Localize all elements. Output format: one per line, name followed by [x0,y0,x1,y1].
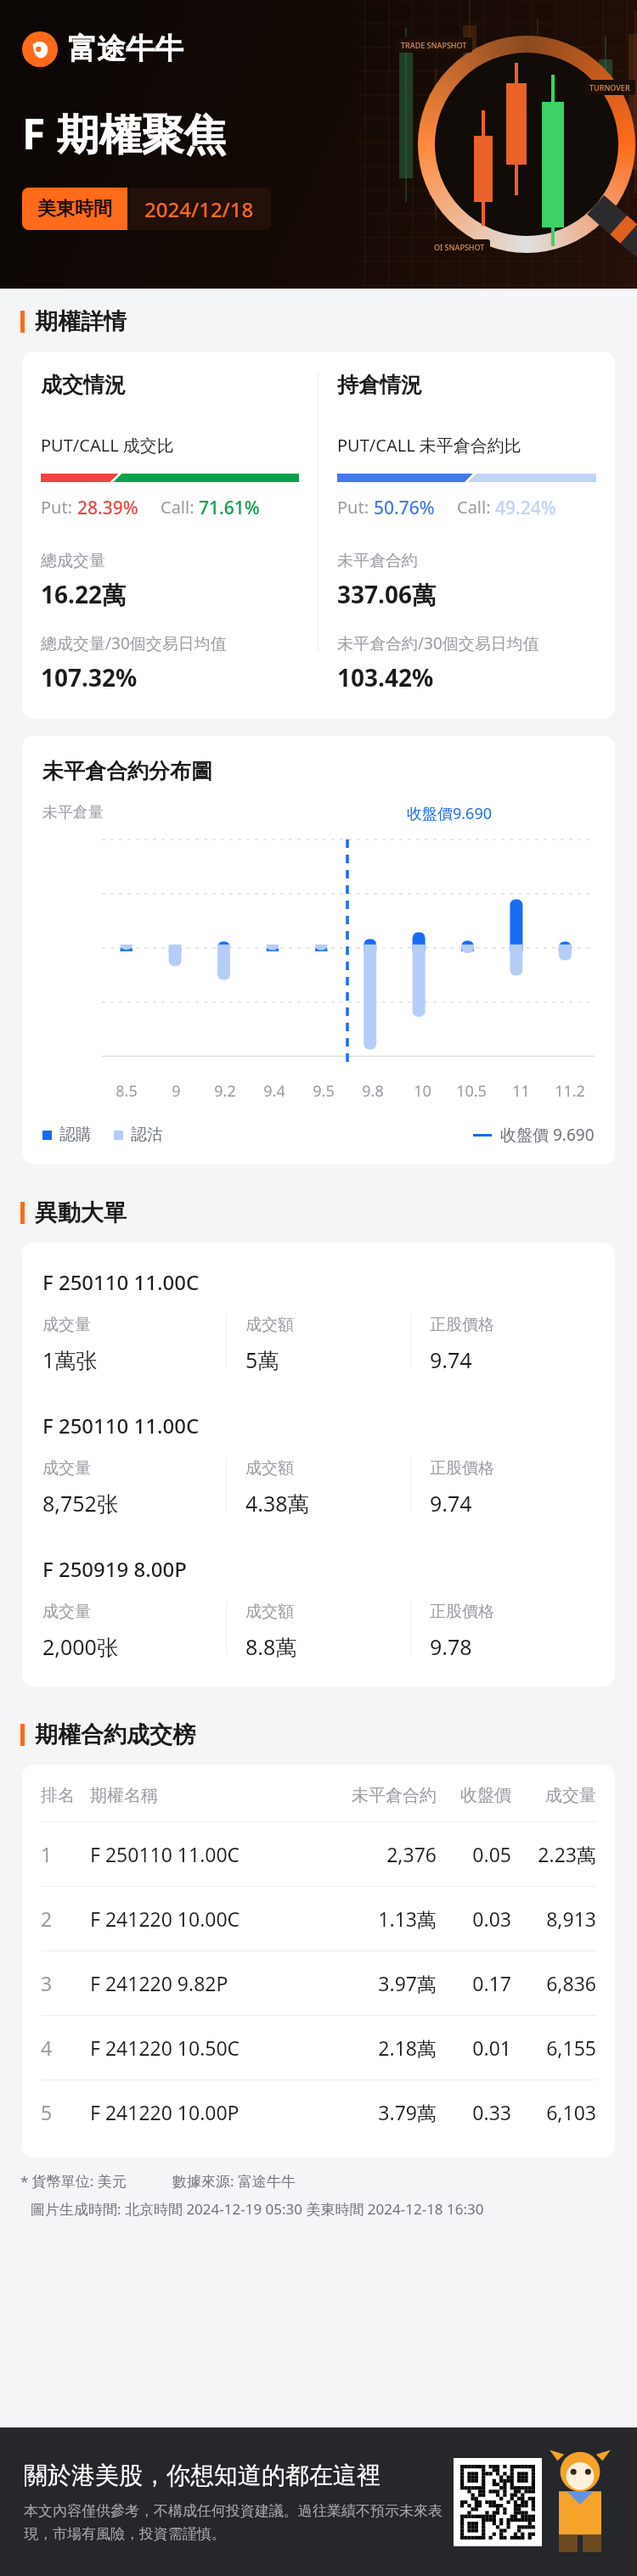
staticText: Put: [337,496,374,519]
staticText: Call: [457,496,495,519]
staticText: 正股價格 [430,1315,494,1335]
staticText: 8,752张 [42,1489,118,1518]
staticText: 10.5 [456,1080,487,1102]
staticText: 6,155 [511,2034,596,2061]
staticText: 9.8 [362,1080,384,1102]
staticText: 未平倉合約/30個交易日均值 [337,632,539,654]
staticText: 9.74 [430,1345,472,1374]
button[interactable]: 美東時間 [22,188,271,230]
staticText: 2024/12/18 [144,195,254,223]
staticText: 1萬张 [42,1345,98,1374]
staticText: 總成交量/30個交易日均值 [41,632,227,654]
staticText: 2,376 [328,1841,437,1867]
staticText: 成交額 [245,1602,294,1622]
staticText: F 250110 11.00C [90,1841,328,1867]
staticText: 期權合約成交榜 [35,1720,195,1749]
staticText: 9 [172,1080,181,1102]
staticText: 收盤價 [437,1785,511,1806]
staticText: F 241220 10.50C [90,2034,328,2061]
staticText: 9.74 [430,1489,472,1518]
staticText: 認購 [59,1125,92,1145]
staticText: 8.5 [116,1080,138,1102]
staticText: 0.17 [437,1970,511,1996]
staticText: 16.22萬 [41,578,126,610]
staticText: 11.2 [555,1080,585,1102]
staticText: 10 [414,1080,431,1102]
staticText: TRADE SNAPSHOT [401,40,467,50]
staticText: F 250919 8.00P [42,1555,187,1583]
staticText: PUT/CALL 成交比 [41,434,174,457]
staticText: F 241220 9.82P [90,1970,328,1996]
staticText: 9.4 [263,1080,285,1102]
staticText: 成交量 [511,1785,596,1806]
staticText: 持倉情況 [337,372,422,398]
staticText: F 250110 11.00C [42,1268,200,1296]
staticText: F 241220 10.00C [90,1905,328,1932]
staticText: 收盤價 9.690 [500,1124,595,1146]
staticText: 3.97萬 [328,1970,437,1996]
staticText: 期權詳情 [35,307,127,336]
staticText: 美東時間 [37,197,112,221]
staticText: 成交量 [42,1315,91,1335]
staticText: 49.24% [495,496,556,520]
staticText: 3.79萬 [328,2099,437,2125]
staticText: 2 [41,1905,90,1932]
staticText: 28.39% [77,496,138,520]
staticText: 2,000张 [42,1632,118,1661]
staticText: 成交額 [245,1458,294,1479]
staticText: 0.05 [437,1841,511,1867]
staticText: 1 [41,1841,90,1867]
staticText: 關於港美股，你想知道的都在這裡 [24,2461,381,2490]
staticText: 6,103 [511,2099,596,2125]
staticText: 9.78 [430,1632,472,1661]
button[interactable]: 2 [41,1887,596,1950]
staticText: 排名 [41,1785,90,1806]
staticText: 數據來源: 富途牛牛 [172,2171,296,2191]
staticText: F 250110 11.00C [42,1411,200,1440]
staticText: 5萬 [245,1345,279,1374]
staticText: 4.38萬 [245,1489,309,1518]
staticText: 71.61% [199,496,260,520]
staticText: OI SNAPSHOT [434,242,485,252]
staticText: 0.03 [437,1905,511,1932]
button[interactable]: 4 [41,2016,596,2079]
staticText: 正股價格 [430,1458,494,1479]
button[interactable]: 3 [41,1951,596,2015]
staticText: 收盤價9.690 [407,803,493,824]
staticText: TURNOVER [589,82,630,93]
staticText: 8.8萬 [245,1632,297,1661]
staticText: 9.5 [313,1080,335,1102]
staticText: 成交量 [42,1602,91,1622]
staticText: 正股價格 [430,1602,494,1622]
staticText: 337.06萬 [337,578,436,610]
staticText: 3 [41,1970,90,1996]
staticText: 未平倉量 [42,803,104,822]
staticText: F 241220 10.00P [90,2099,328,2125]
staticText: 期權名稱 [90,1785,328,1806]
staticText: PUT/CALL 未平倉合約比 [337,434,521,457]
staticText: 50.76% [374,496,435,520]
staticText: 成交額 [245,1315,294,1335]
staticText: 未平倉合約分布圖 [42,758,212,784]
button[interactable]: 5 [41,2080,596,2144]
button[interactable]: F 250110 11.00C [22,1249,615,1393]
staticText: 4 [41,2034,90,2061]
staticText: 未平倉合約 [337,551,418,571]
staticText: 富途牛牛 [68,31,183,67]
button[interactable]: F 250110 11.00C [22,1393,615,1536]
staticText: 現，市場有風險，投資需謹慎。 [24,2525,226,2543]
staticText: 圖片生成時間: 北京時間 2024-12-19 05:30 美東時間 2024-… [31,2199,484,2219]
staticText: Call: [161,496,199,519]
staticText: 5 [41,2099,90,2125]
staticText: 總成交量 [41,551,105,571]
staticText: 成交情況 [41,372,126,398]
staticText: 0.01 [437,2034,511,2061]
staticText: 1.13萬 [328,1905,437,1932]
staticText: 9.2 [214,1080,236,1102]
button[interactable]: 1 [41,1822,596,1886]
staticText: 8,913 [511,1905,596,1932]
staticText: 認沽 [131,1125,163,1145]
staticText: * 貨幣單位: 美元 [20,2171,127,2191]
button[interactable]: F 250919 8.00P [22,1536,615,1680]
button[interactable]: 關於港美股，你想知道的都在這裡 [0,2427,637,2576]
